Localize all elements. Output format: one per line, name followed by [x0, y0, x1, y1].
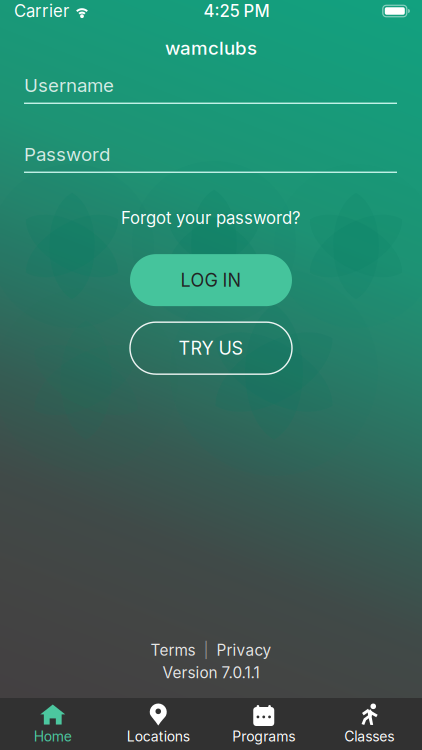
button[interactable]: LOG IN [130, 254, 292, 306]
staticText: Username [24, 74, 114, 97]
staticText: Home [34, 728, 72, 745]
staticText: Classes [344, 728, 394, 745]
staticText: | [203, 641, 208, 659]
button[interactable]: Classes [316, 698, 422, 750]
button[interactable]: Home [0, 698, 105, 750]
staticText: Privacy [216, 641, 271, 659]
staticText: Forgot your password? [121, 208, 301, 228]
button[interactable]: Privacy [216, 641, 271, 659]
staticText: Programs [232, 728, 295, 745]
staticText: Terms [150, 641, 195, 659]
button[interactable]: Programs [211, 698, 316, 750]
staticText: wamclubs [165, 37, 257, 59]
staticText: Carrier [14, 1, 69, 21]
button[interactable]: Terms [150, 641, 195, 659]
staticText: LOG IN [180, 269, 241, 291]
staticText: TRY US [178, 337, 243, 359]
button[interactable]: Forgot your password? [111, 203, 311, 233]
button[interactable]: TRY US [130, 322, 292, 374]
button[interactable]: Locations [105, 698, 211, 750]
staticText: Locations [127, 728, 190, 745]
staticText: Password [24, 143, 110, 166]
staticText: Version 7.0.1.1 [162, 663, 259, 682]
staticText: 4:25 PM [203, 1, 269, 21]
